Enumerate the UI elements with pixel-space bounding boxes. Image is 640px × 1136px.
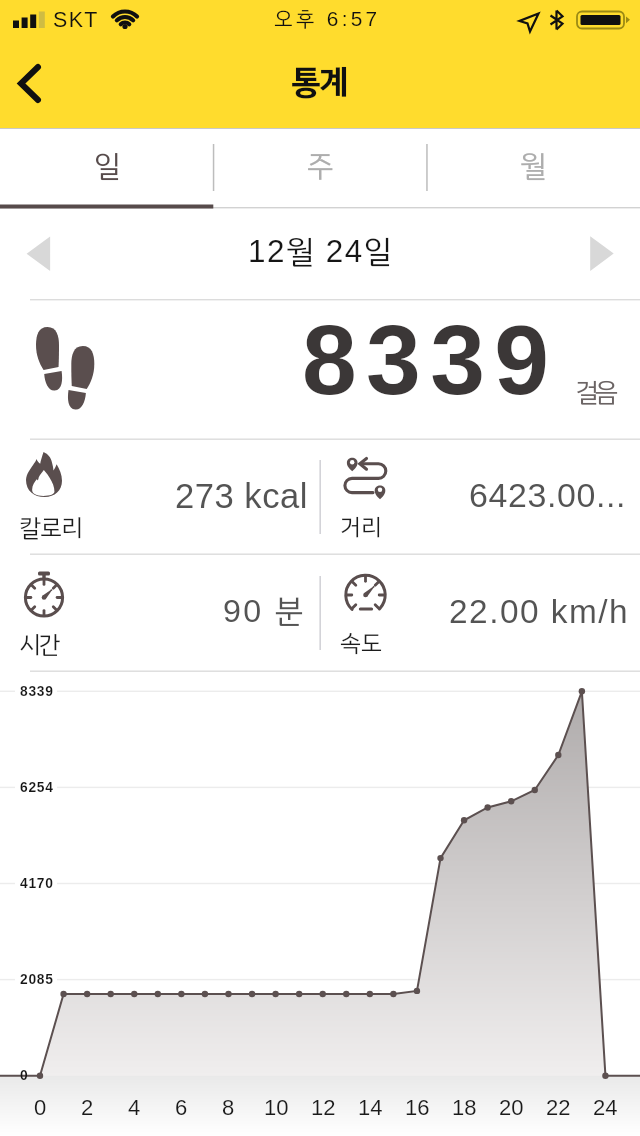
staticText: 통계 (291, 57, 347, 107)
staticText: 24 (593, 1095, 618, 1120)
staticText: 0 (20, 1068, 29, 1083)
staticText: SKT (53, 8, 99, 32)
staticText: 90 분 (223, 587, 306, 635)
staticText: 14 (358, 1095, 383, 1120)
staticText: 0 (34, 1095, 47, 1120)
button[interactable]: 월 (427, 129, 640, 208)
staticText: 12월 24일 (248, 228, 394, 275)
staticText: 오후 6:57 (274, 3, 381, 34)
staticText: 8339 (302, 305, 559, 415)
staticText: 걸음 (575, 373, 615, 412)
staticText: 2 (81, 1095, 94, 1120)
staticText: 6 (175, 1095, 188, 1120)
staticText: 20 (499, 1095, 524, 1120)
staticText: 4 (128, 1095, 141, 1120)
staticText: 10 (264, 1095, 289, 1120)
staticText: 18 (452, 1095, 477, 1120)
staticText: 일 (94, 144, 121, 189)
staticText: 8339 (20, 684, 54, 699)
staticText: 273 kcal (175, 477, 308, 516)
staticText: 시간 (19, 626, 58, 663)
button[interactable]: Next day (570, 228, 632, 280)
button[interactable]: Previous day (8, 228, 70, 280)
staticText: 8 (222, 1095, 235, 1120)
staticText: 칼로리 (19, 510, 83, 546)
staticText: 주 (307, 144, 334, 189)
staticText: 속도 (340, 626, 382, 661)
staticText: 4170 (20, 876, 54, 891)
staticText: 거리 (340, 510, 382, 545)
staticText: 12 (311, 1095, 336, 1120)
staticText: 6423.00... (469, 476, 627, 514)
staticText: 22 (546, 1095, 571, 1120)
staticText: 월 (520, 144, 547, 189)
button[interactable]: 일 (0, 129, 214, 208)
staticText: 6254 (20, 780, 54, 795)
staticText: 22.00 km/h (449, 593, 630, 630)
staticText: 2085 (20, 972, 54, 987)
staticText: 16 (405, 1095, 430, 1120)
button[interactable]: 주 (214, 129, 427, 208)
button[interactable]: Back (0, 40, 78, 128)
